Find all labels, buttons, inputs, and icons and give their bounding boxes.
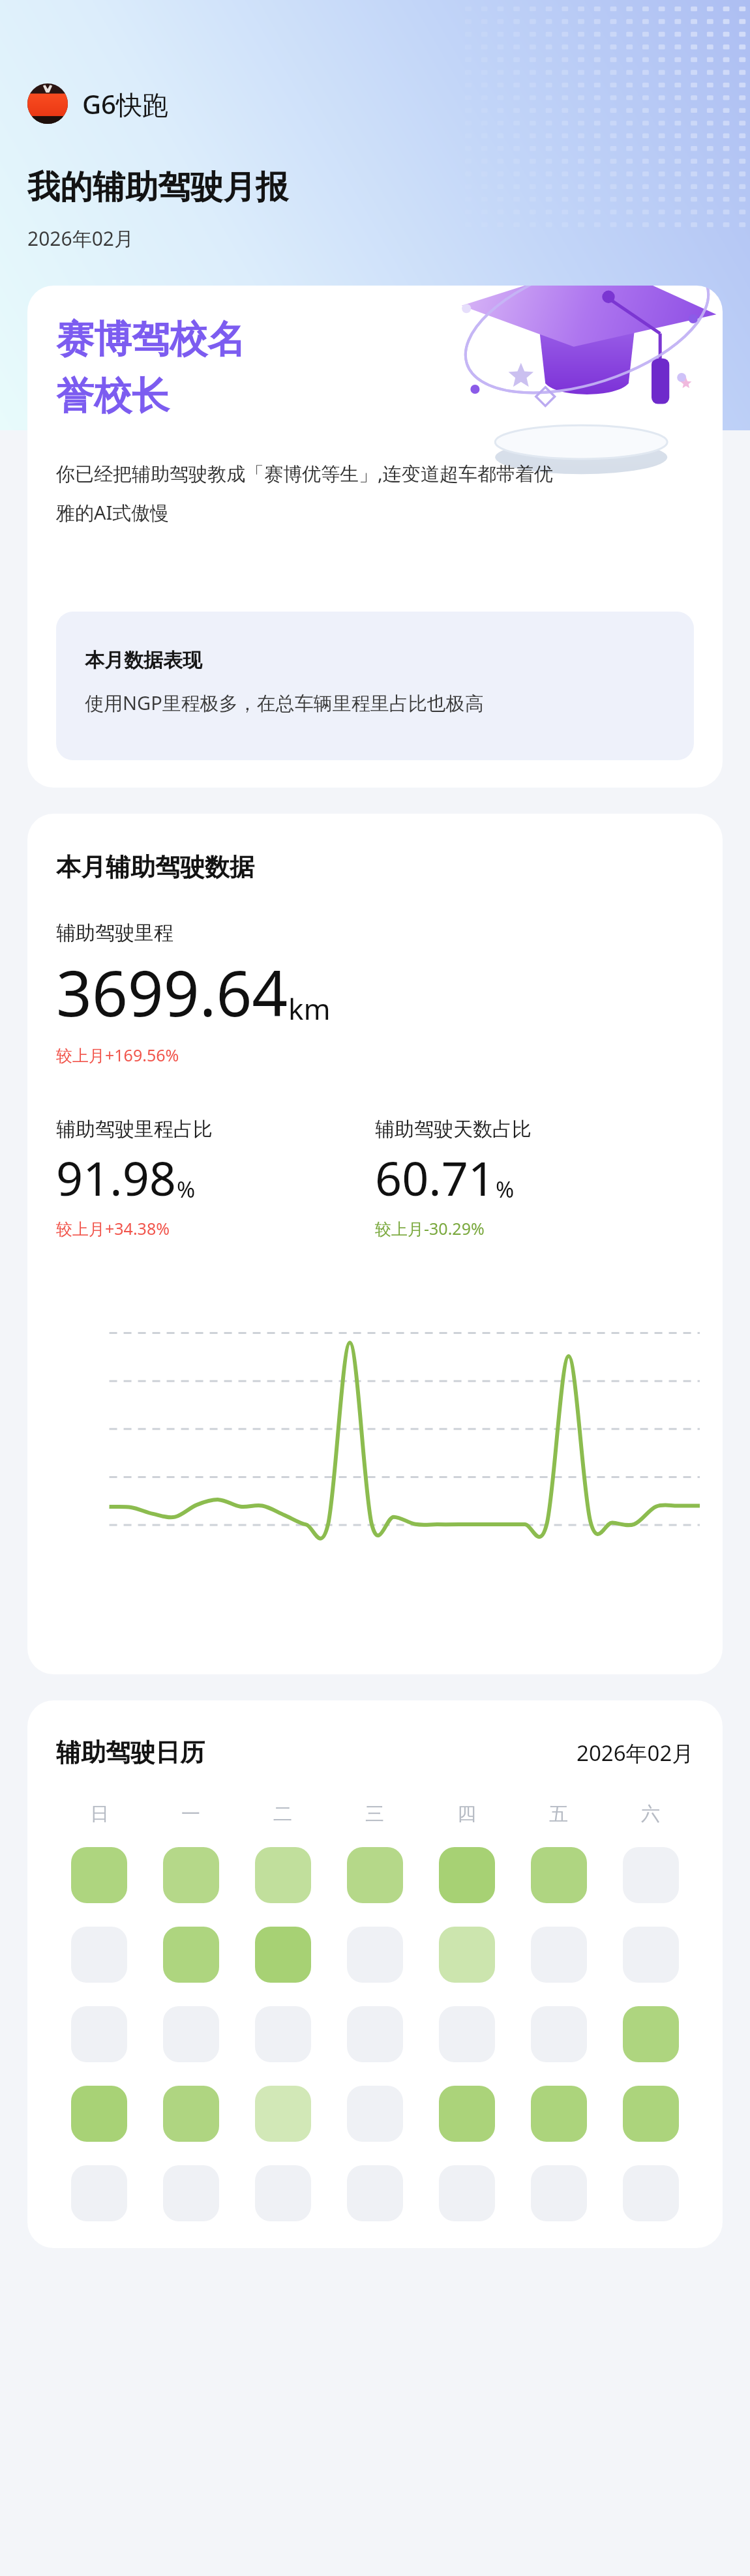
button[interactable] xyxy=(347,2006,403,2062)
button[interactable] xyxy=(163,2165,219,2221)
staticText: 60.71 xyxy=(375,1146,496,1209)
button[interactable] xyxy=(439,1847,495,1903)
button[interactable] xyxy=(623,2165,679,2221)
button[interactable] xyxy=(71,1927,127,1983)
staticText: 辅助驾驶里程占比 xyxy=(56,1117,213,1142)
staticText: 四 xyxy=(457,1802,476,1826)
staticText: 较上月+34.38% xyxy=(56,1217,170,1239)
button[interactable] xyxy=(531,2165,587,2221)
staticText: 本月辅助驾驶数据 xyxy=(56,851,254,883)
staticText: 2026年02月 xyxy=(27,225,134,252)
button[interactable] xyxy=(347,1927,403,1983)
staticText: 三 xyxy=(365,1802,384,1826)
staticText: 辅助驾驶日历 xyxy=(56,1737,205,1768)
staticText: 较上月+169.56% xyxy=(56,1044,179,1066)
staticText: % xyxy=(496,1174,515,1204)
button[interactable] xyxy=(347,2086,403,2142)
staticText: 誉校长 xyxy=(56,372,170,420)
staticText: 使用NGP里程极多，在总车辆里程里占比也极高 xyxy=(85,690,484,716)
button[interactable] xyxy=(439,1927,495,1983)
button[interactable]: Profile avatar xyxy=(27,83,168,124)
button[interactable] xyxy=(531,1847,587,1903)
staticText: km xyxy=(288,989,331,1028)
staticText: 日 xyxy=(90,1802,109,1826)
staticText: 辅助驾驶里程 xyxy=(56,921,173,945)
staticText: 辅助驾驶天数占比 xyxy=(375,1117,532,1142)
staticText: 91.98 xyxy=(56,1146,177,1209)
button[interactable] xyxy=(163,2006,219,2062)
button[interactable] xyxy=(255,1927,311,1983)
staticText: 赛博驾校名 xyxy=(56,316,245,363)
staticText: 六 xyxy=(641,1802,660,1826)
staticText: 二 xyxy=(273,1802,292,1826)
button[interactable] xyxy=(623,2086,679,2142)
button[interactable] xyxy=(623,2006,679,2062)
staticText: 较上月-30.29% xyxy=(375,1217,485,1239)
button[interactable] xyxy=(439,2086,495,2142)
staticText: 你已经把辅助驾驶教成「赛博优等生」,连变道超车都带着优 xyxy=(56,460,553,486)
button[interactable] xyxy=(531,1927,587,1983)
button[interactable] xyxy=(347,1847,403,1903)
staticText: 雅的AI式傲慢 xyxy=(56,499,170,526)
other: Profile avatar xyxy=(27,83,68,124)
button[interactable] xyxy=(163,2086,219,2142)
button[interactable] xyxy=(71,2006,127,2062)
button[interactable] xyxy=(255,1847,311,1903)
button[interactable] xyxy=(71,2165,127,2221)
button[interactable] xyxy=(439,2006,495,2062)
button[interactable] xyxy=(531,2006,587,2062)
button[interactable] xyxy=(163,1927,219,1983)
staticText: 本月数据表现 xyxy=(85,648,202,673)
staticText: % xyxy=(177,1174,196,1204)
button[interactable] xyxy=(71,2086,127,2142)
button[interactable] xyxy=(623,1927,679,1983)
staticText: 3699.64 xyxy=(56,949,288,1035)
button[interactable] xyxy=(623,1847,679,1903)
button[interactable] xyxy=(163,1847,219,1903)
staticText: G6快跑 xyxy=(82,86,168,122)
button[interactable] xyxy=(255,2165,311,2221)
staticText: 2026年02月 xyxy=(577,1738,694,1768)
staticText: 五 xyxy=(549,1802,568,1826)
staticText: 我的辅助驾驶月报 xyxy=(27,167,288,208)
button[interactable] xyxy=(531,2086,587,2142)
button[interactable] xyxy=(255,2086,311,2142)
button[interactable] xyxy=(255,2006,311,2062)
button[interactable] xyxy=(347,2165,403,2221)
button[interactable] xyxy=(71,1847,127,1903)
staticText: 一 xyxy=(181,1802,200,1826)
button[interactable] xyxy=(439,2165,495,2221)
